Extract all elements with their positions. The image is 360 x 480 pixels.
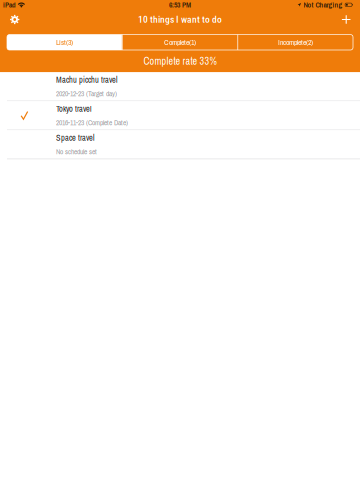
button[interactable]: Complete(1) — [123, 35, 237, 50]
button[interactable]: Machu picchu travel — [0, 72, 360, 101]
staticText: No schedule set — [56, 147, 97, 157]
staticText: 6:53 PM — [169, 0, 191, 10]
button[interactable]: List(3) — [7, 35, 122, 50]
staticText: iPad — [3, 0, 16, 10]
staticText: Machu picchu travel — [56, 74, 118, 85]
staticText: 10 things I want to do — [138, 14, 222, 25]
staticText: List(3) — [56, 37, 73, 47]
staticText: Tokyo travel — [56, 103, 92, 114]
staticText: Not Charging — [303, 0, 342, 10]
staticText: 2020-12-23 (Target day) — [56, 89, 117, 99]
staticText: Complete(1) — [164, 37, 196, 47]
button[interactable]: Tokyo travel — [0, 101, 360, 130]
staticText: Space travel — [56, 132, 95, 143]
button[interactable]: Settings — [5, 9, 24, 29]
staticText: Incomplete(2) — [278, 37, 313, 47]
staticText: 2016-11-23 (Complete Date) — [56, 118, 128, 128]
button[interactable]: Space travel — [0, 130, 360, 159]
button[interactable]: Incomplete(2) — [238, 35, 353, 50]
button[interactable]: Add item — [337, 9, 356, 29]
staticText: Complete rate 33% — [143, 54, 216, 68]
